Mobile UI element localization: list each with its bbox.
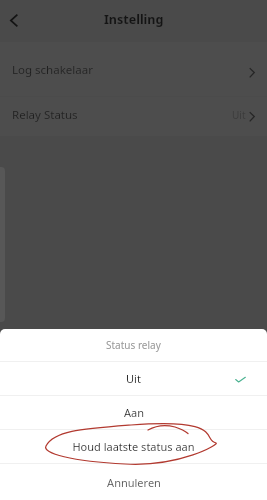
staticText: Log schakelaar [12,62,93,78]
staticText: Annuleren [107,475,161,490]
button[interactable]: Relay Status [0,97,267,136]
other: Selected [235,376,246,383]
staticText: Houd laatste status aan [72,439,195,454]
staticText: Relay Status [12,107,78,123]
button[interactable]: Log schakelaar [0,42,267,96]
button[interactable]: Uit [0,362,267,395]
button[interactable]: Back [0,5,30,37]
staticText: Instelling [104,11,164,28]
button[interactable]: Aan [0,396,267,429]
staticText: Uit [232,108,246,122]
staticText: Aan [124,405,144,420]
button[interactable]: Houd laatste status aan [0,430,267,463]
staticText: Status relay [106,338,161,352]
button[interactable]: Annuleren [0,464,267,500]
staticText: Uit [126,371,141,386]
